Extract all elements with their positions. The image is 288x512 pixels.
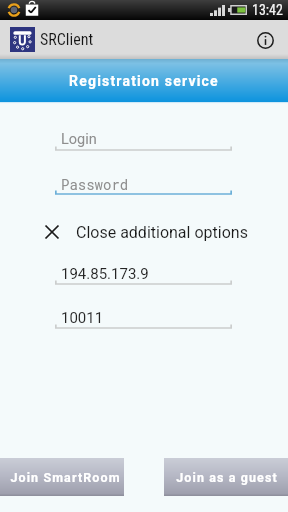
button[interactable]: Close additional options [45, 222, 288, 242]
button[interactable]: Join as a guest [164, 458, 288, 496]
button[interactable]: Info [246, 21, 284, 59]
button[interactable]: 194.85.173.9 [55, 265, 232, 285]
staticText: Join as a guest [176, 470, 278, 485]
staticText: Password [61, 175, 129, 193]
staticText: Registration service [69, 73, 219, 89]
staticText: SRClient [40, 30, 94, 49]
staticText: 13:42 [252, 2, 283, 18]
button[interactable]: Join SmartRoom [0, 458, 124, 496]
staticText: 194.85.173.9 [61, 265, 149, 283]
button[interactable]: Login [55, 131, 232, 151]
staticText: Login [61, 131, 97, 148]
button[interactable]: Password [55, 175, 232, 195]
staticText: Join SmartRoom [10, 470, 121, 485]
button[interactable]: 10011 [55, 309, 232, 329]
staticText: Close additional options [76, 223, 248, 242]
staticText: 10011 [61, 309, 104, 327]
